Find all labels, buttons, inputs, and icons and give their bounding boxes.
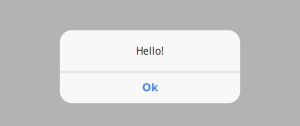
staticText: Ok xyxy=(142,79,158,94)
staticText: Hello! xyxy=(136,44,164,58)
button[interactable]: Ok xyxy=(60,72,240,103)
